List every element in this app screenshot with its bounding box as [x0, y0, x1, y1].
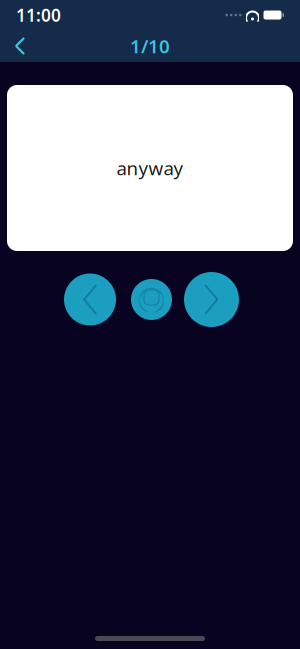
button[interactable]: Play audio: [131, 279, 172, 320]
staticText: anyway: [116, 156, 183, 180]
button[interactable]: Previous: [64, 273, 116, 325]
staticText: 11:00: [16, 3, 61, 26]
button[interactable]: Back: [0, 30, 40, 62]
button[interactable]: Next: [184, 272, 239, 327]
staticText: 1/10: [130, 34, 170, 58]
